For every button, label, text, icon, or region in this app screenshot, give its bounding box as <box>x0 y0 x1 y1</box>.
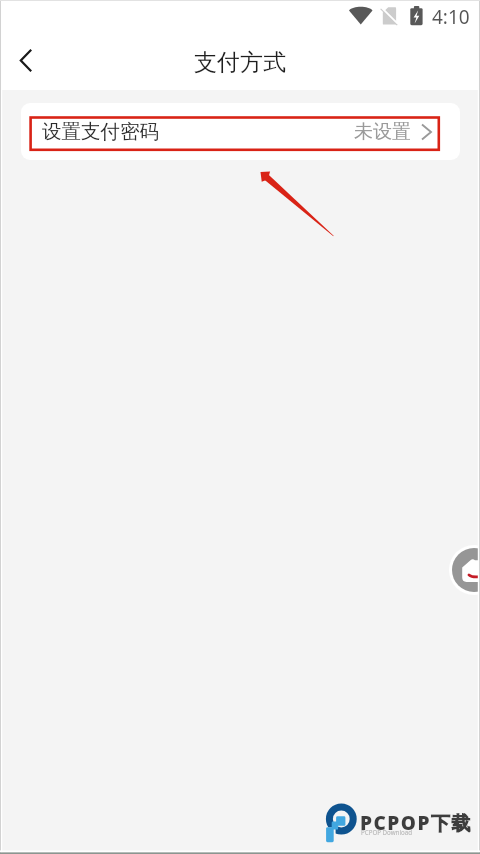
staticText: 未设置 <box>354 120 411 144</box>
staticText: 4:10 <box>432 4 470 30</box>
staticText: PCPOP下载 <box>360 810 472 836</box>
button[interactable]: Assistant <box>449 545 480 597</box>
button[interactable]: Back <box>3 37 49 83</box>
staticText: 支付方式 <box>194 48 286 77</box>
button[interactable]: 设置支付密码 <box>21 103 460 160</box>
staticText: PCPOP Download <box>361 828 413 836</box>
staticText: 设置支付密码 <box>42 119 159 144</box>
